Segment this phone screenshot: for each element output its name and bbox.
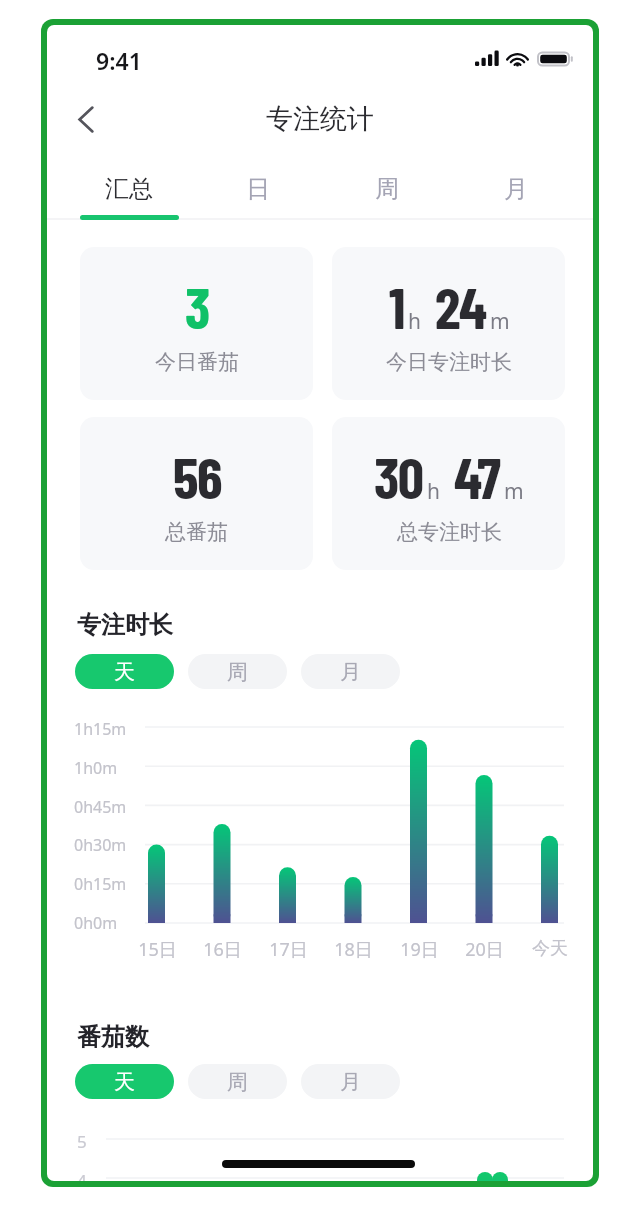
staticText: 专注统计 (266, 102, 374, 136)
staticText: 30 (374, 441, 423, 511)
staticText: 0h0m (74, 912, 118, 934)
button[interactable]: 周 (188, 1064, 287, 1099)
button[interactable]: 周 (188, 654, 287, 689)
button[interactable]: 天 (75, 1064, 174, 1099)
staticText: 15日 (138, 937, 177, 962)
button[interactable]: 天 (75, 654, 174, 689)
staticText: 周 (227, 1069, 248, 1095)
staticText: 1h15m (74, 718, 127, 740)
button[interactable]: 3 (80, 247, 313, 400)
staticText: 17日 (269, 937, 308, 962)
staticText: 总专注时长 (397, 519, 502, 545)
staticText: 1h0m (74, 757, 118, 779)
staticText: 天 (114, 659, 135, 685)
button[interactable]: 日 (193, 163, 322, 223)
staticText: 9:41 (96, 45, 142, 76)
staticText: 20日 (465, 937, 504, 962)
staticText: 周 (227, 659, 248, 685)
staticText: 4 (77, 1169, 87, 1181)
staticText: 总番茄 (165, 519, 228, 545)
button[interactable]: 月 (451, 163, 580, 223)
staticText: 5 (77, 1130, 87, 1153)
staticText: 56 (173, 441, 221, 511)
staticText: 专注时长 (77, 610, 173, 640)
button[interactable]: Back (62, 95, 110, 143)
button[interactable]: 月 (301, 654, 400, 689)
staticText: h (408, 307, 421, 336)
button[interactable]: 56 (80, 417, 313, 570)
staticText: 16日 (203, 937, 242, 962)
staticText: h (427, 477, 440, 506)
staticText: 18日 (334, 937, 373, 962)
button[interactable]: 1 (332, 247, 565, 400)
staticText: 0h45m (74, 796, 127, 818)
staticText: 月 (340, 659, 361, 685)
button[interactable]: 月 (301, 1064, 400, 1099)
staticText: 0h15m (74, 873, 127, 895)
staticText: 0h30m (74, 834, 127, 856)
staticText: 今天 (532, 937, 568, 960)
staticText: m (504, 477, 524, 506)
staticText: 1 (389, 271, 404, 341)
staticText: 月 (340, 1069, 361, 1095)
staticText: 番茄数 (77, 1022, 149, 1052)
staticText: m (490, 307, 510, 336)
staticText: 3 (185, 271, 209, 341)
staticText: 47 (454, 441, 500, 511)
staticText: 24 (435, 271, 486, 341)
staticText: 汇总 (105, 174, 153, 204)
staticText: 19日 (400, 937, 439, 962)
staticText: 月 (504, 174, 528, 204)
staticText: 今日番茄 (155, 349, 239, 375)
button[interactable]: 周 (322, 163, 451, 223)
staticText: 周 (375, 174, 399, 204)
button[interactable]: 30 (332, 417, 565, 570)
staticText: 天 (114, 1069, 135, 1095)
button[interactable]: 汇总 (65, 163, 193, 223)
staticText: 日 (246, 174, 270, 204)
staticText: 今日专注时长 (386, 349, 512, 375)
